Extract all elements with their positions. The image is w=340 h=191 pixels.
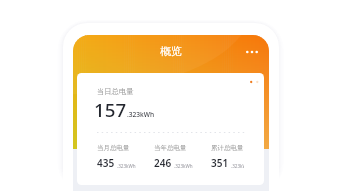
staticText: 当日总电量 [97,87,134,96]
staticText: 概览 [160,44,182,58]
staticText: 435 [97,156,115,170]
staticText: 157 [94,97,127,122]
staticText: .323kWh [117,163,136,169]
staticText: 当年总电量 [154,144,187,152]
button[interactable]: More options [242,42,262,62]
staticText: 累计总电量 [211,144,244,152]
staticText: .323kWh [231,163,244,169]
staticText: .323kWh [174,163,193,169]
staticText: 246 [154,156,172,170]
button[interactable]: 当日总电量 [77,73,264,185]
staticText: .323kWh [127,110,155,119]
staticText: 当月总电量 [97,144,130,152]
staticText: 351 [211,156,229,170]
